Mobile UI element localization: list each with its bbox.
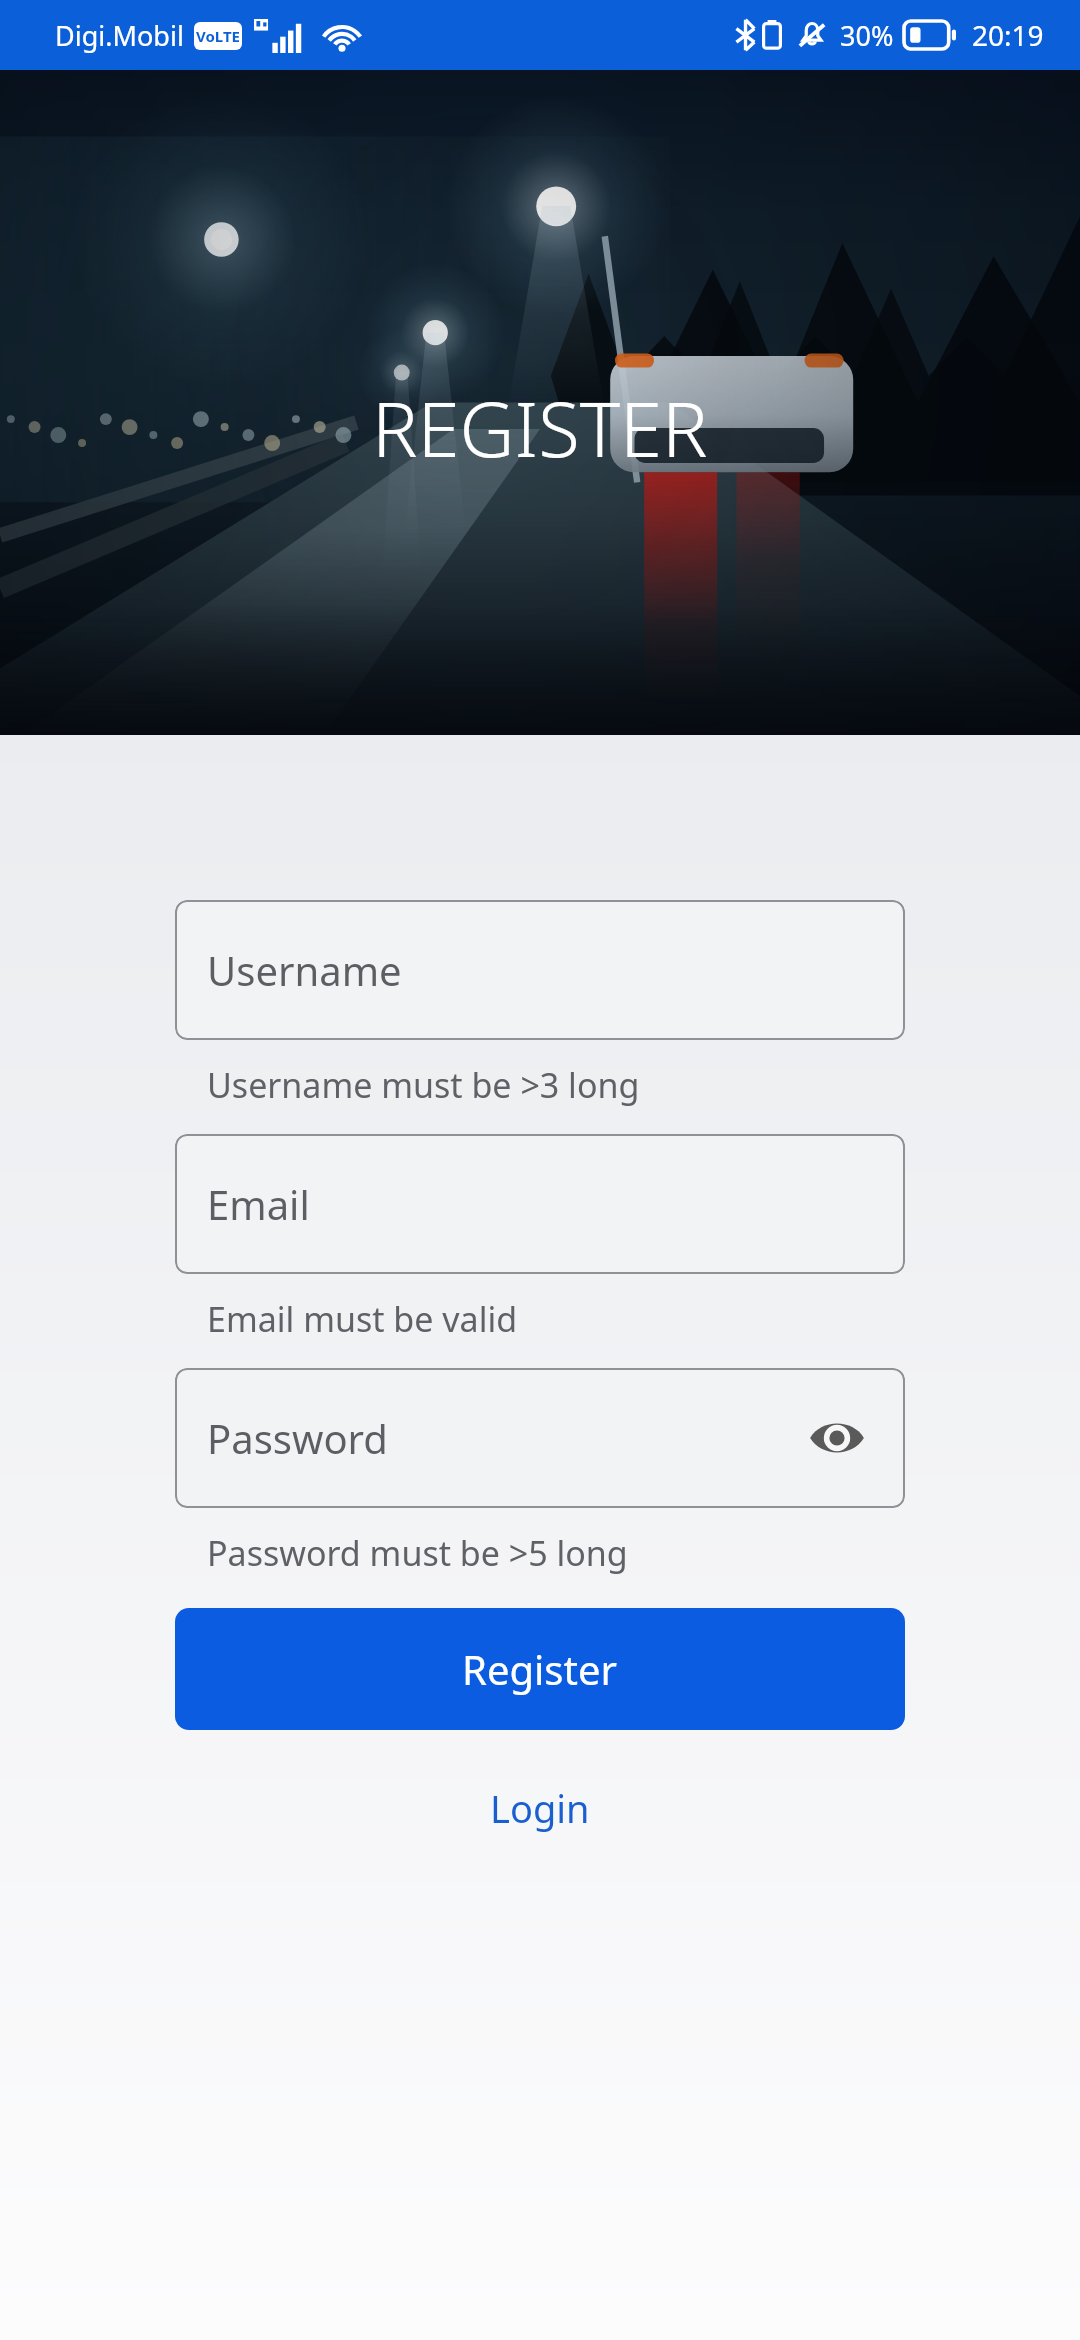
staticText: Register	[462, 1642, 618, 1696]
staticText: Password must be >5 long	[207, 1530, 628, 1576]
staticText: 20:19	[972, 16, 1044, 54]
staticText: Password	[207, 1411, 388, 1465]
staticText: Digi.Mobil	[55, 17, 184, 54]
staticText: Email	[207, 1177, 310, 1231]
staticText: Username must be >3 long	[207, 1062, 640, 1108]
button[interactable]: Username	[175, 900, 905, 1040]
staticText: VoLTE	[196, 26, 240, 46]
button[interactable]: Show password	[801, 1402, 873, 1474]
staticText: Login	[490, 1782, 590, 1834]
button[interactable]: Email	[175, 1134, 905, 1274]
staticText: Username	[207, 943, 402, 997]
staticText: Email must be valid	[207, 1296, 518, 1342]
button[interactable]: Login	[175, 1782, 905, 1834]
button[interactable]: Register	[175, 1608, 905, 1730]
staticText: 30%	[840, 17, 894, 54]
button[interactable]: Password	[175, 1368, 905, 1508]
staticText: REGISTER	[372, 376, 708, 480]
